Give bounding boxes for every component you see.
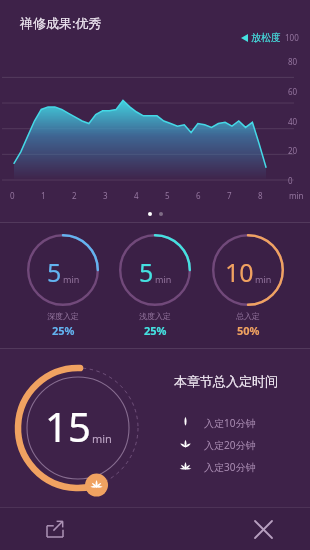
staticText: 60 bbox=[288, 86, 298, 97]
button[interactable]: 15 bbox=[14, 364, 142, 492]
staticText: 15 bbox=[45, 399, 91, 453]
staticText: min bbox=[92, 431, 112, 446]
staticText: 5 bbox=[139, 255, 154, 289]
staticText: 20 bbox=[288, 145, 298, 156]
button[interactable]: 入定30分钟 bbox=[174, 459, 256, 474]
staticText: 深度入定 bbox=[47, 311, 79, 321]
staticText: 50% bbox=[237, 323, 260, 338]
staticText: min bbox=[155, 273, 172, 285]
staticText: 浅度入定 bbox=[139, 311, 171, 321]
staticText: 2 bbox=[72, 190, 77, 201]
staticText: 5 bbox=[47, 255, 62, 289]
staticText: 25% bbox=[144, 323, 167, 338]
staticText: min bbox=[289, 190, 304, 201]
staticText: 放松度 bbox=[251, 31, 281, 44]
button[interactable]: 入定10分钟 bbox=[174, 415, 256, 430]
staticText: 6 bbox=[196, 190, 201, 201]
staticText: 本章节总入定时间 bbox=[174, 373, 278, 389]
staticText: 入定20分钟 bbox=[204, 438, 256, 452]
staticText: 25% bbox=[52, 323, 75, 338]
staticText: 0 bbox=[10, 190, 15, 201]
button[interactable]: 入定20分钟 bbox=[174, 437, 256, 452]
button[interactable]: 10 bbox=[212, 234, 284, 338]
staticText: 10 bbox=[225, 255, 254, 289]
staticText: 7 bbox=[227, 190, 232, 201]
staticText: 入定30分钟 bbox=[204, 460, 256, 474]
staticText: 禅修成果:优秀 bbox=[20, 14, 102, 32]
button[interactable]: Close bbox=[248, 514, 278, 544]
staticText: 8 bbox=[258, 190, 263, 201]
staticText: 总入定 bbox=[236, 311, 260, 321]
staticText: 1 bbox=[41, 190, 46, 201]
staticText: 3 bbox=[103, 190, 108, 201]
staticText: 100 bbox=[285, 32, 299, 43]
staticText: 入定10分钟 bbox=[204, 416, 256, 430]
button[interactable]: 5 bbox=[27, 234, 99, 338]
button[interactable]: 5 bbox=[119, 234, 191, 338]
staticText: min bbox=[63, 273, 80, 285]
staticText: 5 bbox=[165, 190, 170, 201]
button[interactable]: Share bbox=[40, 514, 70, 544]
staticText: 40 bbox=[288, 116, 298, 127]
staticText: min bbox=[255, 273, 272, 285]
staticText: 0 bbox=[288, 175, 293, 186]
staticText: 4 bbox=[134, 190, 139, 201]
staticText: 80 bbox=[288, 56, 298, 67]
